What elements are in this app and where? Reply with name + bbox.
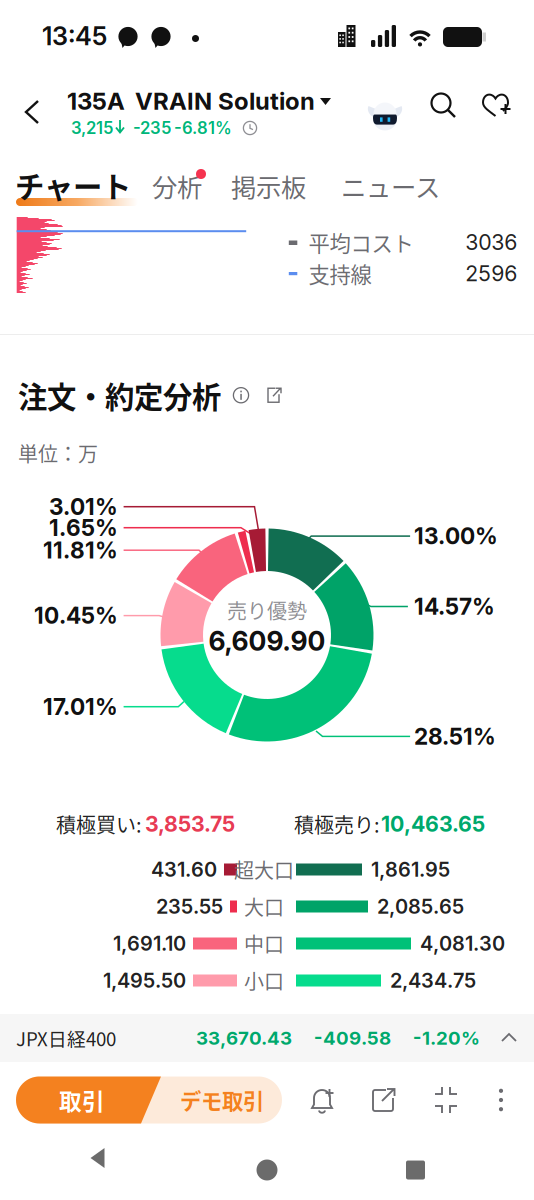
staticText: 17.01% [43,693,118,720]
staticText: 10.45% [34,602,118,629]
staticText: 431.60 [151,857,217,882]
button[interactable]: チャート [0,152,120,186]
staticText: -6.81% [174,118,232,138]
button[interactable]: AI assistant [0,74,38,104]
staticText: 小口 [244,966,284,995]
button[interactable]: More options [484,1078,518,1122]
staticText: 2,434.75 [390,968,476,993]
staticText: 135A [67,86,125,115]
staticText: 掲示板 [231,168,306,204]
staticText: 1,495.50 [103,968,186,993]
staticText: デモ取引 [180,1085,264,1115]
staticText: 2596 [465,260,517,286]
staticText: 積極買い: [56,809,142,838]
button[interactable]: Back [88,1146,148,1194]
staticText: 支持線 [309,258,372,289]
staticText: 2,085.65 [377,894,464,919]
button[interactable]: Export [264,385,284,405]
button[interactable]: 分析 [0,152,62,182]
staticText: 1,861.95 [371,857,450,882]
staticText: 3036 [465,229,517,255]
staticText: 10,463.65 [381,811,485,837]
staticText: 中口 [244,929,284,958]
button[interactable]: ニュース [0,152,100,182]
button[interactable]: 取引 [16,1076,282,1123]
staticText: 1.65% [49,514,118,541]
button[interactable]: Info [232,386,250,404]
staticText: 注文・約定分析 [18,374,221,416]
staticText: 3,853.75 [145,811,235,837]
staticText: 積極売り: [294,809,380,838]
button[interactable]: Home [237,1146,297,1194]
staticText: 14.57% [414,593,495,620]
staticText: JPX日経400 [16,1024,116,1051]
button[interactable]: Alerts [300,1078,344,1122]
staticText: 13:45 [42,21,107,51]
staticText: 売り優勢 [227,595,307,624]
staticText: 超大口 [234,855,294,884]
button[interactable]: 掲示板 [0,152,80,182]
staticText: 6,609.90 [208,625,325,657]
button[interactable]: Share [362,1078,406,1122]
staticText: 13.00% [414,522,498,550]
staticText: -1.20% [413,1027,480,1049]
button[interactable]: Collapse [424,1078,468,1122]
staticText: 33,670.43 [196,1027,292,1049]
staticText: 分析 [152,168,202,204]
staticText: 平均コスト [309,227,414,258]
staticText: 11.81% [43,536,118,564]
staticText: -235 [133,118,171,138]
staticText: 単位：万 [18,438,98,467]
staticText: ニュース [341,168,440,204]
staticText: 3,215 [71,118,113,138]
staticText: 1,691.10 [113,931,186,956]
staticText: 大口 [244,892,284,921]
staticText: チャート [15,164,131,206]
staticText: -409.58 [314,1027,391,1049]
button[interactable]: Recent apps [385,1146,445,1194]
staticText: 3.01% [49,493,118,520]
staticText: 235.55 [156,894,223,919]
staticText: VRAIN Solution [135,86,315,115]
staticText: 4,081.30 [420,931,505,956]
staticText: 28.51% [414,723,496,750]
staticText: 取引 [59,1084,105,1116]
button[interactable]: Back [0,74,50,130]
